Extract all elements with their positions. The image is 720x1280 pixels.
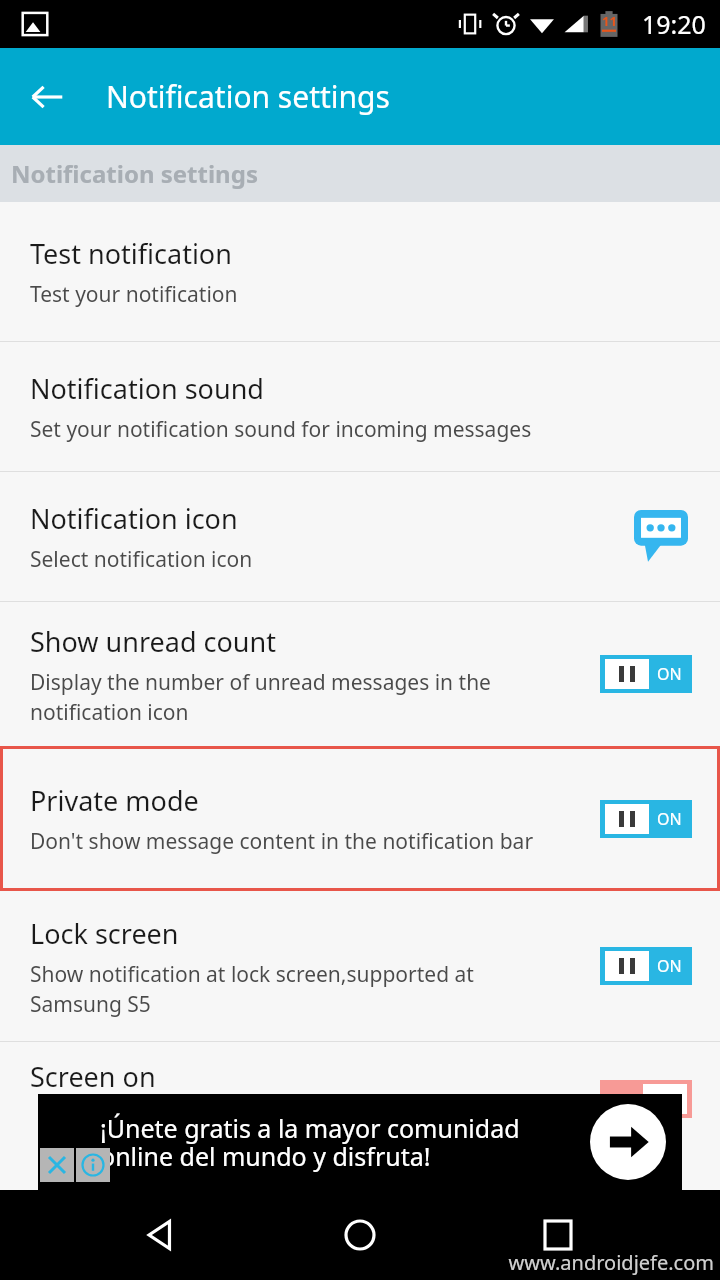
button[interactable]: Back [126, 1199, 198, 1271]
button[interactable]: Recent apps [522, 1199, 594, 1271]
staticText: Show notification at lock screen,support… [30, 960, 550, 1018]
button[interactable]: Notification sound [0, 342, 720, 471]
staticText: ¡Únete gratis a la mayor comunidad onlin… [100, 1111, 542, 1173]
staticText: Test your notification [30, 280, 238, 309]
staticText: Lock screen [30, 915, 179, 952]
button[interactable]: Toggle on [600, 655, 692, 693]
button[interactable]: Open ad [590, 1104, 666, 1180]
button[interactable]: Toggle on [600, 947, 692, 985]
staticText: ON [657, 663, 682, 685]
button[interactable]: Private mode [0, 746, 720, 891]
staticText: Notification icon [30, 500, 238, 537]
button[interactable]: Ad info [76, 1148, 110, 1182]
staticText: Set your notification sound for incoming… [30, 415, 532, 444]
staticText: ON [657, 808, 682, 830]
staticText: Display the number of unread messages in… [30, 668, 550, 726]
staticText: Notification sound [30, 370, 264, 407]
staticText: Don't show message content in the notifi… [30, 827, 534, 856]
button[interactable]: Home [324, 1199, 396, 1271]
button[interactable]: Notification icon [0, 472, 720, 601]
button[interactable]: Lock screen [0, 891, 720, 1041]
button[interactable]: Back [18, 68, 76, 126]
button[interactable]: Close ad [40, 1148, 74, 1182]
button[interactable]: Toggle off [600, 1080, 692, 1118]
staticText: Screen on [30, 1058, 156, 1095]
staticText: Notification settings [106, 76, 390, 117]
button[interactable]: Screen on [0, 1042, 720, 1172]
staticText: Select notification icon [30, 545, 253, 574]
button[interactable]: Test notification [0, 202, 720, 341]
staticText: Test notification [30, 235, 232, 272]
staticText: 11 [602, 12, 617, 30]
staticText: ON [657, 955, 682, 977]
staticText: 19:20 [642, 7, 706, 41]
staticText: Show unread count [30, 623, 276, 660]
staticText: www.androidjefe.com [508, 1249, 714, 1276]
staticText: Notification settings [11, 157, 258, 190]
button[interactable]: Toggle on [600, 800, 692, 838]
button[interactable]: ¡Únete gratis a la mayor comunidad onlin… [38, 1094, 682, 1190]
button[interactable]: Show unread count [0, 602, 720, 746]
staticText: Private mode [30, 782, 199, 819]
